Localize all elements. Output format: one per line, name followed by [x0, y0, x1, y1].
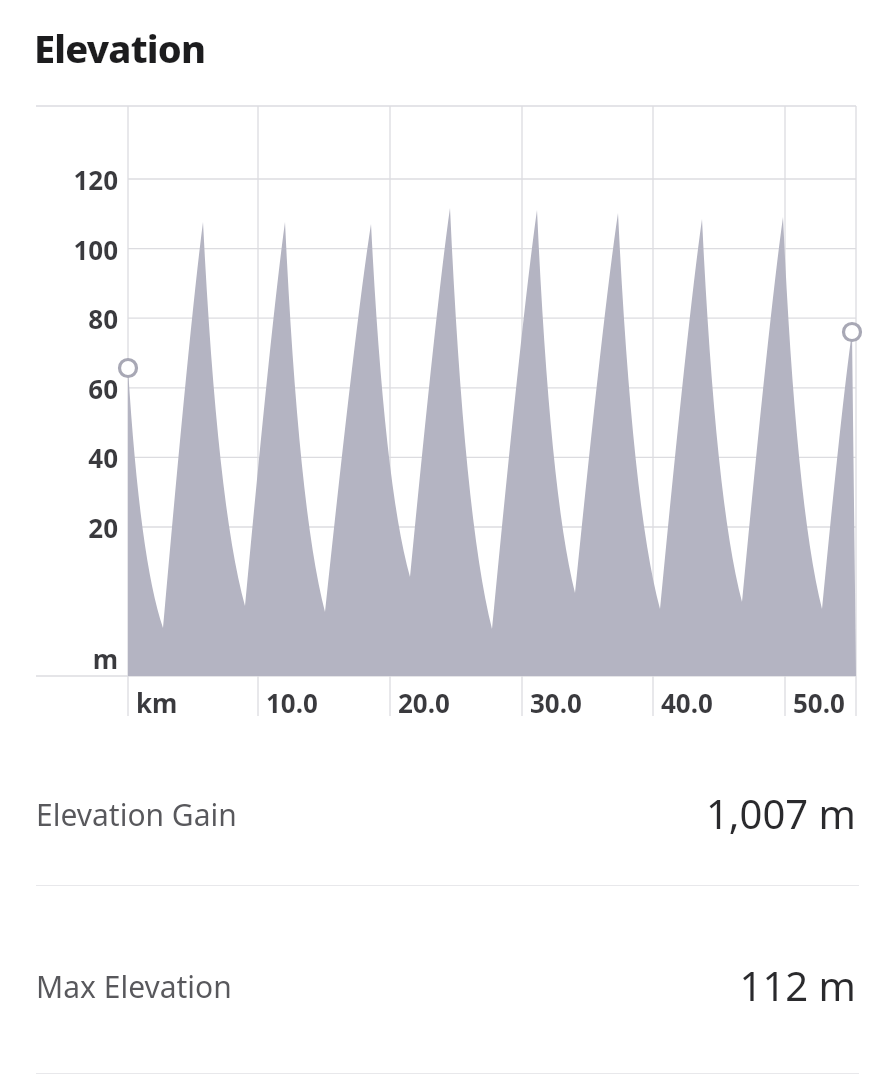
- staticText: 20: [10, 510, 118, 545]
- staticText: 60: [10, 371, 118, 406]
- staticText: 50.0: [793, 685, 845, 720]
- staticText: 80: [10, 301, 118, 336]
- staticText: Elevation Gain: [36, 794, 237, 835]
- staticText: 40.0: [661, 685, 713, 720]
- staticText: 112 m: [400, 958, 856, 1012]
- staticText: 40: [10, 440, 118, 475]
- staticText: Elevation: [34, 22, 206, 74]
- button[interactable]: Elevation Gain: [0, 786, 889, 882]
- staticText: Max Elevation: [36, 966, 232, 1007]
- staticText: 30.0: [530, 685, 582, 720]
- button[interactable]: Elevation profile chart: [0, 96, 889, 736]
- staticText: 120: [10, 162, 118, 197]
- staticText: m: [10, 641, 118, 676]
- staticText: 100: [10, 232, 118, 267]
- staticText: 10.0: [266, 685, 318, 720]
- staticText: km: [136, 685, 178, 720]
- staticText: 20.0: [398, 685, 450, 720]
- button[interactable]: Max Elevation: [0, 958, 889, 1054]
- staticText: 1,007 m: [400, 786, 856, 840]
